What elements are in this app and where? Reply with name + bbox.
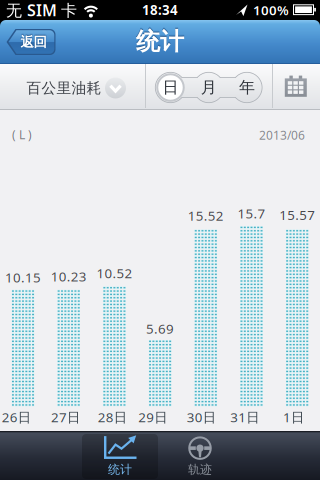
staticText: 31日 bbox=[230, 408, 259, 426]
staticText: 百公里油耗 bbox=[26, 79, 101, 97]
staticText: 10.15 bbox=[5, 268, 41, 286]
staticText: 返回 bbox=[20, 34, 46, 50]
staticText: 18:34 bbox=[142, 1, 178, 19]
button[interactable]: 年 bbox=[231, 71, 263, 103]
staticText: 日 bbox=[162, 78, 178, 97]
staticText: 15.52 bbox=[188, 207, 224, 224]
staticText: 28日 bbox=[98, 408, 127, 426]
staticText: 30日 bbox=[187, 408, 216, 426]
staticText: 15.7 bbox=[237, 205, 265, 222]
button[interactable]: 轨迹 bbox=[162, 432, 238, 479]
staticText: 轨迹 bbox=[188, 462, 212, 477]
staticText: 5.69 bbox=[146, 320, 174, 337]
staticText: 100% bbox=[253, 1, 289, 19]
button[interactable]: 返回 bbox=[6, 28, 56, 55]
button[interactable]: 选择数据类型 bbox=[105, 77, 126, 98]
staticText: 月 bbox=[201, 78, 217, 97]
staticText: 10.52 bbox=[96, 264, 132, 282]
button[interactable]: 月 bbox=[193, 71, 225, 103]
staticText: 26日 bbox=[2, 408, 31, 426]
button[interactable]: 统计 bbox=[82, 432, 158, 479]
staticText: 1日 bbox=[283, 408, 304, 426]
staticText: 15.57 bbox=[279, 206, 315, 224]
staticText: 10.23 bbox=[51, 267, 87, 285]
button[interactable]: 日 bbox=[154, 71, 186, 103]
staticText: 27日 bbox=[51, 408, 80, 426]
staticText: ( L ) bbox=[12, 126, 32, 142]
staticText: 统计 bbox=[108, 462, 132, 477]
staticText: 统计 bbox=[136, 27, 184, 56]
button[interactable]: 选择日期 bbox=[283, 74, 309, 100]
staticText: 29日 bbox=[138, 408, 167, 426]
staticText: 无 SIM 卡 bbox=[6, 0, 77, 21]
staticText: 年 bbox=[239, 78, 255, 97]
staticText: 2013/06 bbox=[259, 127, 305, 143]
